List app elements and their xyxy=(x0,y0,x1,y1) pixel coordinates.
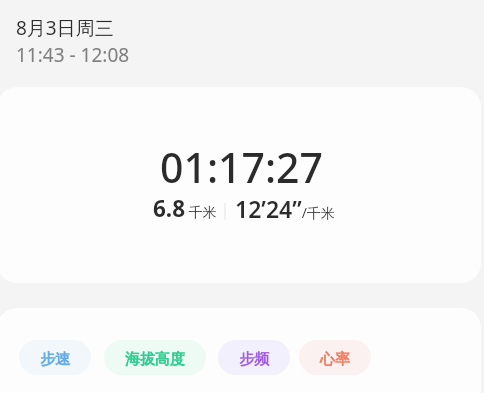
staticText: 01:17:27 xyxy=(160,139,324,195)
staticText: 心率 xyxy=(320,350,350,369)
button[interactable]: 海拔高度 xyxy=(104,340,206,375)
button[interactable]: 心率 xyxy=(299,340,371,375)
button[interactable]: 01:17:27 xyxy=(0,87,481,283)
staticText: 11:43 - 12:08 xyxy=(16,42,130,68)
staticText: 步频 xyxy=(239,350,269,369)
staticText: 12’24”/千米 xyxy=(235,193,335,224)
button[interactable]: 步频 xyxy=(218,340,290,375)
staticText: 海拔高度 xyxy=(125,350,185,369)
button[interactable]: 步速 xyxy=(19,340,91,375)
staticText: 8月3日周三 xyxy=(16,15,114,41)
staticText: 步速 xyxy=(40,350,70,369)
staticText: 6.8 千米 xyxy=(153,193,217,224)
